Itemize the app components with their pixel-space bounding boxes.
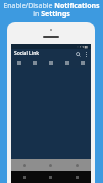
button[interactable]: System 2 [37, 171, 64, 183]
button[interactable]: Nav 3 [64, 159, 91, 171]
button[interactable]: Tab 4 [59, 58, 75, 68]
button[interactable]: Nav 1 [11, 159, 37, 171]
button[interactable]: Tab 1 [11, 58, 27, 68]
button[interactable]: More options [82, 50, 90, 58]
button[interactable]: Tab 5 [75, 58, 91, 68]
staticText: ◦ ⚡ ▾ ▮▮ [77, 45, 89, 49]
button[interactable]: System 1 [11, 171, 37, 183]
button[interactable]: System 3 [64, 171, 91, 183]
button[interactable]: Tab 2 [27, 58, 43, 68]
staticText: Enable/Disable Notifications in Settings [0, 1, 103, 18]
button[interactable]: Nav 2 [37, 159, 64, 171]
button[interactable]: Search [74, 50, 82, 58]
button[interactable]: Tab 3 [43, 58, 59, 68]
staticText: Social Link [14, 50, 40, 57]
